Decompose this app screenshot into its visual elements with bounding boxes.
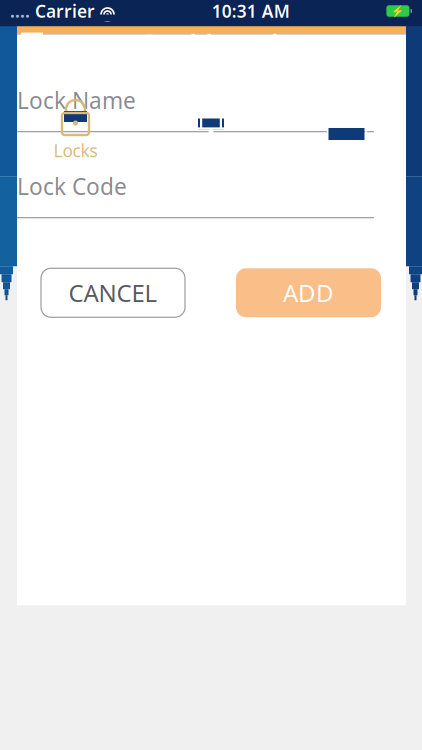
button[interactable]: Locks <box>15 100 135 162</box>
button[interactable]: Menu <box>10 22 54 64</box>
button[interactable]: Request <box>286 100 406 162</box>
button[interactable]: ADD <box>236 268 381 317</box>
button[interactable]: Notification <box>151 100 271 162</box>
staticText: Dashboard <box>143 26 278 60</box>
staticText: Request <box>313 139 380 162</box>
staticText: Lock Code <box>17 171 127 201</box>
staticText: ADD <box>283 277 334 309</box>
button[interactable]: CANCEL <box>41 268 185 317</box>
staticText: .... <box>10 0 30 22</box>
staticText: 10:31 AM <box>212 0 290 22</box>
button[interactable]: Lock Code <box>17 171 374 218</box>
staticText: Carrier <box>30 0 100 22</box>
staticText: CANCEL <box>68 277 157 309</box>
staticText: ⚡ <box>391 5 404 17</box>
staticText: Locks <box>53 139 97 162</box>
staticText: Lock Name <box>17 85 136 115</box>
button[interactable]: Lock Name <box>17 85 374 132</box>
